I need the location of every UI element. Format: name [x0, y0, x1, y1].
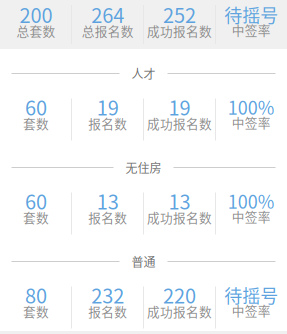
- staticText: 80: [25, 284, 47, 306]
- staticText: 报名数: [88, 116, 127, 130]
- staticText: 100%: [228, 191, 275, 211]
- staticText: 待摇号: [224, 4, 278, 24]
- staticText: 中签率: [232, 209, 271, 223]
- staticText: 264: [91, 3, 124, 26]
- staticText: 220: [163, 284, 196, 306]
- staticText: 待摇号: [224, 285, 278, 305]
- staticText: 报名数: [88, 210, 127, 224]
- staticText: 中签率: [232, 303, 271, 317]
- staticText: 100%: [228, 97, 275, 117]
- staticText: 套数: [23, 210, 49, 224]
- staticText: 人才: [131, 67, 155, 80]
- staticText: 总报名数: [82, 24, 134, 38]
- staticText: 成功报名数: [147, 210, 212, 224]
- staticText: 200: [19, 3, 52, 26]
- staticText: 无住房: [125, 161, 161, 174]
- staticText: 13: [168, 190, 190, 212]
- staticText: 成功报名数: [147, 24, 212, 38]
- staticText: 套数: [23, 116, 49, 130]
- button[interactable]: 人才: [0, 49, 287, 143]
- staticText: 普通: [131, 255, 155, 268]
- staticText: 60: [25, 190, 47, 212]
- staticText: 252: [163, 3, 196, 26]
- button[interactable]: 普通: [0, 237, 287, 331]
- staticText: 成功报名数: [147, 304, 212, 318]
- staticText: 报名数: [88, 304, 127, 318]
- staticText: 总套数: [16, 24, 55, 38]
- staticText: 成功报名数: [147, 116, 212, 130]
- button[interactable]: 无住房: [0, 143, 287, 237]
- staticText: 19: [97, 96, 119, 118]
- staticText: 232: [91, 284, 124, 306]
- staticText: 60: [25, 96, 47, 118]
- staticText: 中签率: [232, 22, 271, 37]
- staticText: 13: [97, 190, 119, 212]
- staticText: 19: [168, 96, 190, 118]
- staticText: 中签率: [232, 115, 271, 129]
- staticText: 套数: [23, 304, 49, 318]
